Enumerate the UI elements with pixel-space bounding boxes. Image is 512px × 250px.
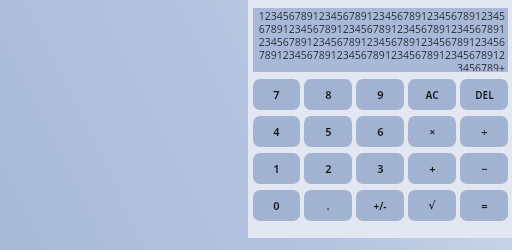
staticText: 0: [273, 198, 280, 213]
staticText: .: [326, 198, 330, 213]
staticText: +: [429, 161, 436, 176]
staticText: 9: [377, 87, 384, 102]
staticText: 7: [273, 87, 280, 102]
staticText: −: [481, 161, 488, 176]
button[interactable]: 6: [356, 116, 404, 147]
button[interactable]: 3: [356, 153, 404, 184]
button[interactable]: 7: [253, 79, 300, 110]
staticText: 1234567891234567891234567891234567891234…: [256, 9, 505, 71]
button[interactable]: .: [304, 190, 352, 221]
staticText: 8: [325, 87, 332, 102]
staticText: DEL: [475, 88, 494, 102]
staticText: 2: [325, 161, 332, 176]
staticText: 5: [325, 124, 332, 139]
staticText: 6: [377, 124, 384, 139]
staticText: 1: [273, 161, 280, 176]
staticText: ÷: [481, 124, 488, 139]
button[interactable]: ÷: [460, 116, 508, 147]
staticText: ×: [429, 124, 436, 139]
button[interactable]: 4: [253, 116, 300, 147]
button[interactable]: 1: [253, 153, 300, 184]
staticText: AC: [425, 88, 439, 102]
staticText: 3: [377, 161, 384, 176]
button[interactable]: =: [460, 190, 508, 221]
button[interactable]: AC: [408, 79, 456, 110]
button[interactable]: 8: [304, 79, 352, 110]
button[interactable]: 2: [304, 153, 352, 184]
staticText: +/-: [373, 199, 387, 213]
button[interactable]: 9: [356, 79, 404, 110]
button[interactable]: 5: [304, 116, 352, 147]
staticText: 4: [273, 124, 280, 139]
button[interactable]: DEL: [460, 79, 508, 110]
button[interactable]: +: [408, 153, 456, 184]
staticText: =: [481, 198, 488, 213]
staticText: √: [428, 199, 436, 212]
button[interactable]: √: [408, 190, 456, 221]
button[interactable]: 0: [253, 190, 300, 221]
button[interactable]: ×: [408, 116, 456, 147]
button[interactable]: −: [460, 153, 508, 184]
button[interactable]: +/-: [356, 190, 404, 221]
